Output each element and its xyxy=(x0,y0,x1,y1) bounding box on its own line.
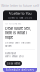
staticText: Schedule delivery xyxy=(5,68,34,72)
button[interactable]: Schedule delivery xyxy=(3,68,37,72)
staticText: here is what I hope xyxy=(5,31,27,40)
staticText: Write letter to future self xyxy=(1,4,39,8)
staticText: opens 12 Mar 2026 xyxy=(7,16,32,19)
staticText: TO FUTURE ME xyxy=(5,22,21,25)
staticText: We'll email you xyxy=(5,55,23,58)
button[interactable]: Seal letter xyxy=(5,61,22,66)
staticText: Sealed until the date above. xyxy=(5,41,30,47)
staticText: Reminder xyxy=(5,52,16,55)
staticText: Seal letter xyxy=(7,62,20,65)
staticText: A Letter to You xyxy=(8,11,31,16)
staticText: Dear future self, xyxy=(5,26,31,31)
